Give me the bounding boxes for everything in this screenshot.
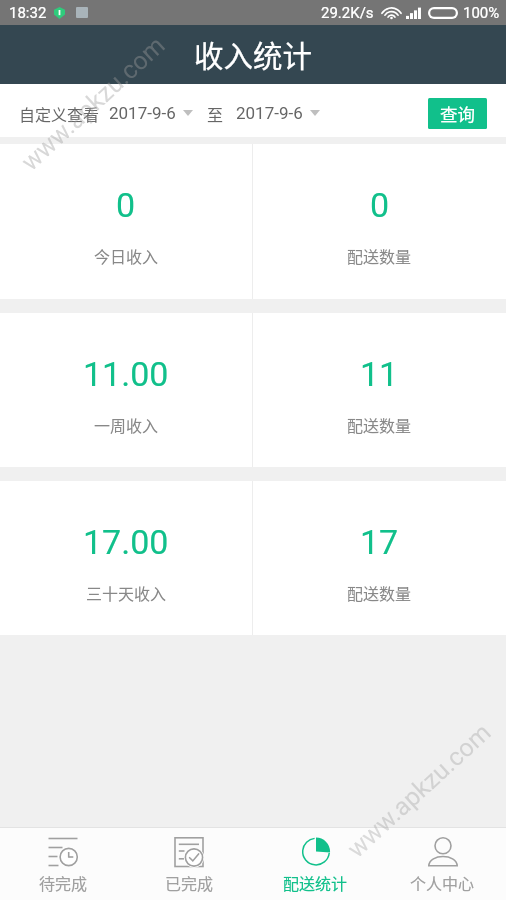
staticText: 11.00 — [83, 354, 169, 394]
staticText: 三十天收入 — [86, 581, 167, 604]
staticText: 2017-9-6 — [109, 103, 176, 123]
button[interactable]: 11 — [253, 313, 506, 467]
button[interactable]: 个人中心 — [379, 828, 506, 900]
staticText: 0 — [370, 185, 390, 225]
button[interactable]: 2017-9-6 — [236, 103, 320, 123]
button[interactable]: 11.00 — [0, 313, 252, 467]
button[interactable]: 17 — [253, 481, 506, 635]
button[interactable]: 0 — [253, 144, 506, 299]
staticText: 配送数量 — [347, 581, 412, 604]
staticText: 配送数量 — [347, 244, 412, 267]
staticText: 0 — [116, 185, 136, 225]
staticText: 18:32 — [9, 4, 47, 22]
staticText: 今日收入 — [94, 244, 159, 267]
staticText: 100% — [463, 4, 500, 22]
staticText: 至 — [207, 102, 224, 125]
staticText: 查询 — [440, 101, 475, 126]
staticText: 17.00 — [83, 522, 169, 562]
staticText: 个人中心 — [410, 871, 475, 894]
staticText: 一周收入 — [94, 413, 159, 436]
button[interactable]: 2017-9-6 — [109, 103, 193, 123]
button[interactable]: 待完成 — [0, 828, 126, 900]
staticText: 配送统计 — [283, 871, 348, 894]
button[interactable]: 17.00 — [0, 481, 252, 635]
staticText: 自定义查看 — [19, 102, 100, 125]
staticText: 待完成 — [39, 871, 88, 894]
staticText: 配送数量 — [347, 413, 412, 436]
staticText: www.apkzu.com — [15, 31, 171, 176]
staticText: www.apkzu.com — [341, 718, 497, 863]
staticText: 17 — [360, 522, 399, 562]
button[interactable]: 查询 — [428, 98, 487, 129]
button[interactable]: 已完成 — [126, 828, 252, 900]
staticText: 2017-9-6 — [236, 103, 303, 123]
staticText: 29.2K/s — [321, 4, 374, 22]
staticText: 已完成 — [165, 871, 214, 894]
button[interactable]: 0 — [0, 144, 252, 299]
button[interactable]: 配送统计 — [252, 828, 379, 900]
staticText: 收入统计 — [194, 33, 313, 76]
staticText: 11 — [360, 354, 399, 394]
